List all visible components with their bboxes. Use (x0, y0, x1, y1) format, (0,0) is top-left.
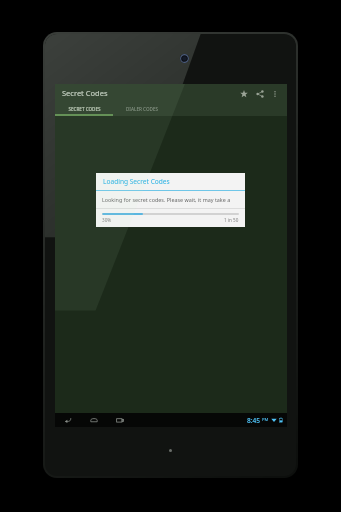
staticText: 8:45 (247, 416, 261, 425)
staticText: DIALER CODES (126, 106, 158, 112)
staticText: Looking for secret codes. Please wait, i… (102, 196, 245, 203)
staticText: 1 in 50 (224, 217, 239, 223)
button[interactable]: DIALER CODES (113, 102, 171, 116)
button[interactable]: Share (254, 88, 265, 99)
button[interactable]: SECRET CODES (55, 102, 113, 116)
staticText: SECRET CODES (68, 106, 101, 112)
button[interactable]: Home (88, 414, 100, 426)
button[interactable]: Recent apps (114, 414, 126, 426)
staticText: PM (262, 417, 269, 423)
staticText: Loading Secret Codes (103, 177, 170, 186)
button[interactable]: Favourite (238, 88, 249, 99)
staticText: 30% (102, 217, 112, 223)
button[interactable]: More options (269, 88, 280, 99)
staticText: Secret Codes (62, 88, 108, 98)
button[interactable]: Back (62, 414, 74, 426)
